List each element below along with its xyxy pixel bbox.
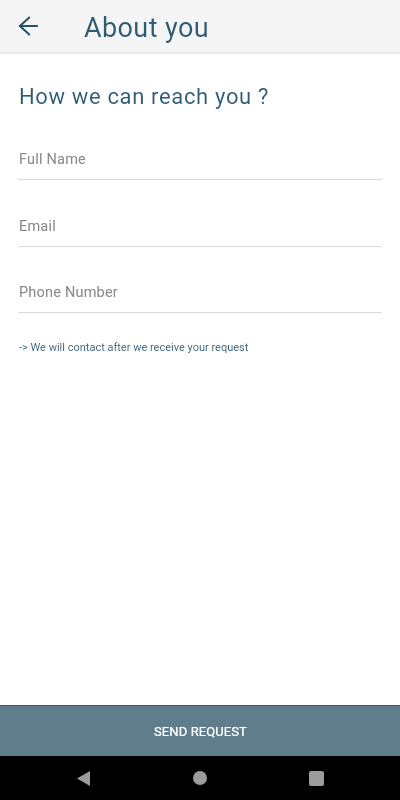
staticText: About you (84, 12, 210, 44)
staticText: Phone Number (19, 284, 118, 301)
staticText: -> We will contact after we receive your… (19, 341, 249, 354)
staticText: SEND REQUEST (154, 724, 247, 739)
button[interactable]: Full Name (0, 151, 400, 180)
staticText: Full Name (19, 151, 86, 168)
button[interactable]: Home (178, 756, 222, 800)
button[interactable]: Phone Number (0, 284, 400, 313)
button[interactable]: SEND REQUEST (0, 705, 400, 756)
button[interactable]: Back (8, 6, 48, 46)
button[interactable]: Email (0, 218, 400, 247)
staticText: How we can reach you ? (19, 84, 270, 110)
staticText: Email (19, 218, 56, 235)
button[interactable]: Back (61, 756, 105, 800)
button[interactable]: Recent apps (294, 756, 338, 800)
